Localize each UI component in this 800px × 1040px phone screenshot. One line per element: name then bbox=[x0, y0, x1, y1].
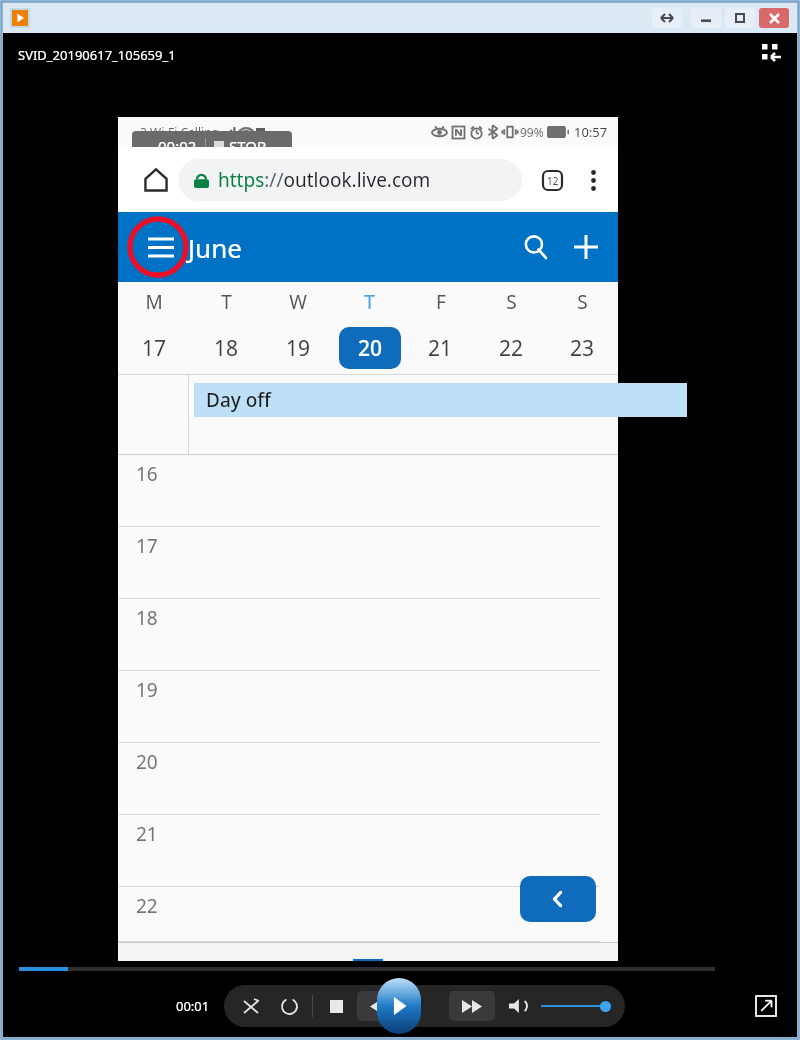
staticText: 20 bbox=[358, 334, 383, 363]
staticText: 18 bbox=[136, 605, 158, 631]
staticText: 10:57 bbox=[574, 123, 608, 141]
staticText: 3 Wi-Fi Calling bbox=[140, 124, 219, 140]
staticText: F bbox=[436, 289, 446, 315]
button[interactable]: 22 bbox=[118, 887, 618, 942]
staticText: SVID_20190617_105659_1 bbox=[18, 46, 176, 64]
staticText: Day off bbox=[206, 387, 271, 413]
button[interactable]: 18 bbox=[118, 599, 618, 671]
staticText: T bbox=[364, 289, 375, 315]
button[interactable]: T bbox=[190, 282, 262, 322]
other: App icon bbox=[12, 10, 28, 26]
staticText: 19 bbox=[286, 334, 311, 363]
button[interactable]: Tabs bbox=[530, 158, 574, 202]
staticText: 00:02 bbox=[158, 136, 197, 156]
staticText: 17 bbox=[136, 533, 158, 559]
staticText: 12 bbox=[547, 174, 559, 188]
button[interactable]: Repeat bbox=[276, 993, 302, 1019]
staticText: 21 bbox=[136, 821, 158, 847]
button[interactable]: T bbox=[334, 282, 405, 322]
staticText: 20 bbox=[136, 749, 158, 775]
button[interactable]: Maximize bbox=[725, 8, 755, 28]
button[interactable]: Volume bbox=[505, 993, 531, 1019]
button[interactable]: 19 bbox=[262, 322, 334, 374]
staticText: 18 bbox=[214, 334, 239, 363]
staticText: https://outlook.live.com bbox=[218, 167, 431, 193]
staticText: 23 bbox=[570, 334, 595, 363]
button[interactable]: Menu bbox=[138, 224, 184, 270]
staticText: STOP bbox=[229, 136, 267, 156]
button[interactable]: 21 bbox=[405, 322, 476, 374]
button[interactable]: Mail bbox=[118, 943, 284, 1005]
button[interactable]: 22 bbox=[476, 322, 547, 374]
button[interactable]: https://outlook.live.com bbox=[178, 159, 522, 201]
button[interactable]: 17 bbox=[118, 527, 618, 599]
button[interactable]: Play bbox=[377, 978, 421, 1034]
button[interactable]: People bbox=[451, 943, 618, 1005]
button[interactable]: S bbox=[547, 282, 618, 322]
staticText: 22 bbox=[136, 893, 158, 919]
staticText: 17 bbox=[142, 334, 167, 363]
button[interactable]: Day off bbox=[189, 383, 687, 417]
button[interactable]: Rewind bbox=[357, 991, 403, 1021]
button[interactable]: W bbox=[262, 282, 334, 322]
staticText: M bbox=[145, 289, 163, 315]
button[interactable]: 17 bbox=[118, 322, 190, 374]
staticText: 22 bbox=[499, 334, 524, 363]
button[interactable]: Close bbox=[759, 8, 789, 28]
button[interactable]: Stop bbox=[323, 993, 349, 1019]
button[interactable]: Search bbox=[510, 221, 562, 273]
button[interactable]: Layout bbox=[761, 43, 783, 65]
staticText: T bbox=[221, 289, 232, 315]
button[interactable]: Full screen bbox=[755, 995, 777, 1017]
button[interactable]: 18 bbox=[190, 322, 262, 374]
button[interactable]: 19 bbox=[118, 671, 618, 743]
staticText: 16 bbox=[136, 461, 158, 487]
button[interactable]: Resize bbox=[652, 8, 682, 28]
button[interactable]: 16 bbox=[118, 455, 618, 527]
button[interactable]: F bbox=[405, 282, 476, 322]
button[interactable]: S bbox=[476, 282, 547, 322]
staticText: S bbox=[506, 289, 517, 315]
staticText: June bbox=[188, 230, 242, 265]
button[interactable]: 00:02 bbox=[132, 131, 292, 161]
button[interactable]: 20 bbox=[334, 322, 405, 374]
button[interactable]: Calendar bbox=[284, 943, 451, 1005]
staticText: 00:01 bbox=[176, 997, 210, 1015]
staticText: W bbox=[289, 289, 307, 315]
button[interactable]: 20 bbox=[118, 743, 618, 815]
button[interactable]: Previous bbox=[520, 876, 596, 922]
button[interactable]: Fast forward bbox=[449, 991, 495, 1021]
button[interactable]: Home bbox=[134, 158, 178, 202]
staticText: 21 bbox=[428, 334, 453, 363]
staticText: S bbox=[577, 289, 588, 315]
button[interactable]: Add event bbox=[562, 219, 610, 275]
button[interactable]: Volume slider bbox=[541, 995, 611, 1017]
button[interactable]: M bbox=[118, 282, 190, 322]
button[interactable]: Shuffle bbox=[238, 993, 264, 1019]
button[interactable]: Minimize bbox=[691, 8, 721, 28]
button[interactable]: 21 bbox=[118, 815, 618, 887]
staticText: 99% bbox=[520, 124, 544, 140]
button[interactable]: More options bbox=[574, 158, 612, 202]
button[interactable]: 23 bbox=[547, 322, 618, 374]
staticText: 19 bbox=[136, 677, 158, 703]
